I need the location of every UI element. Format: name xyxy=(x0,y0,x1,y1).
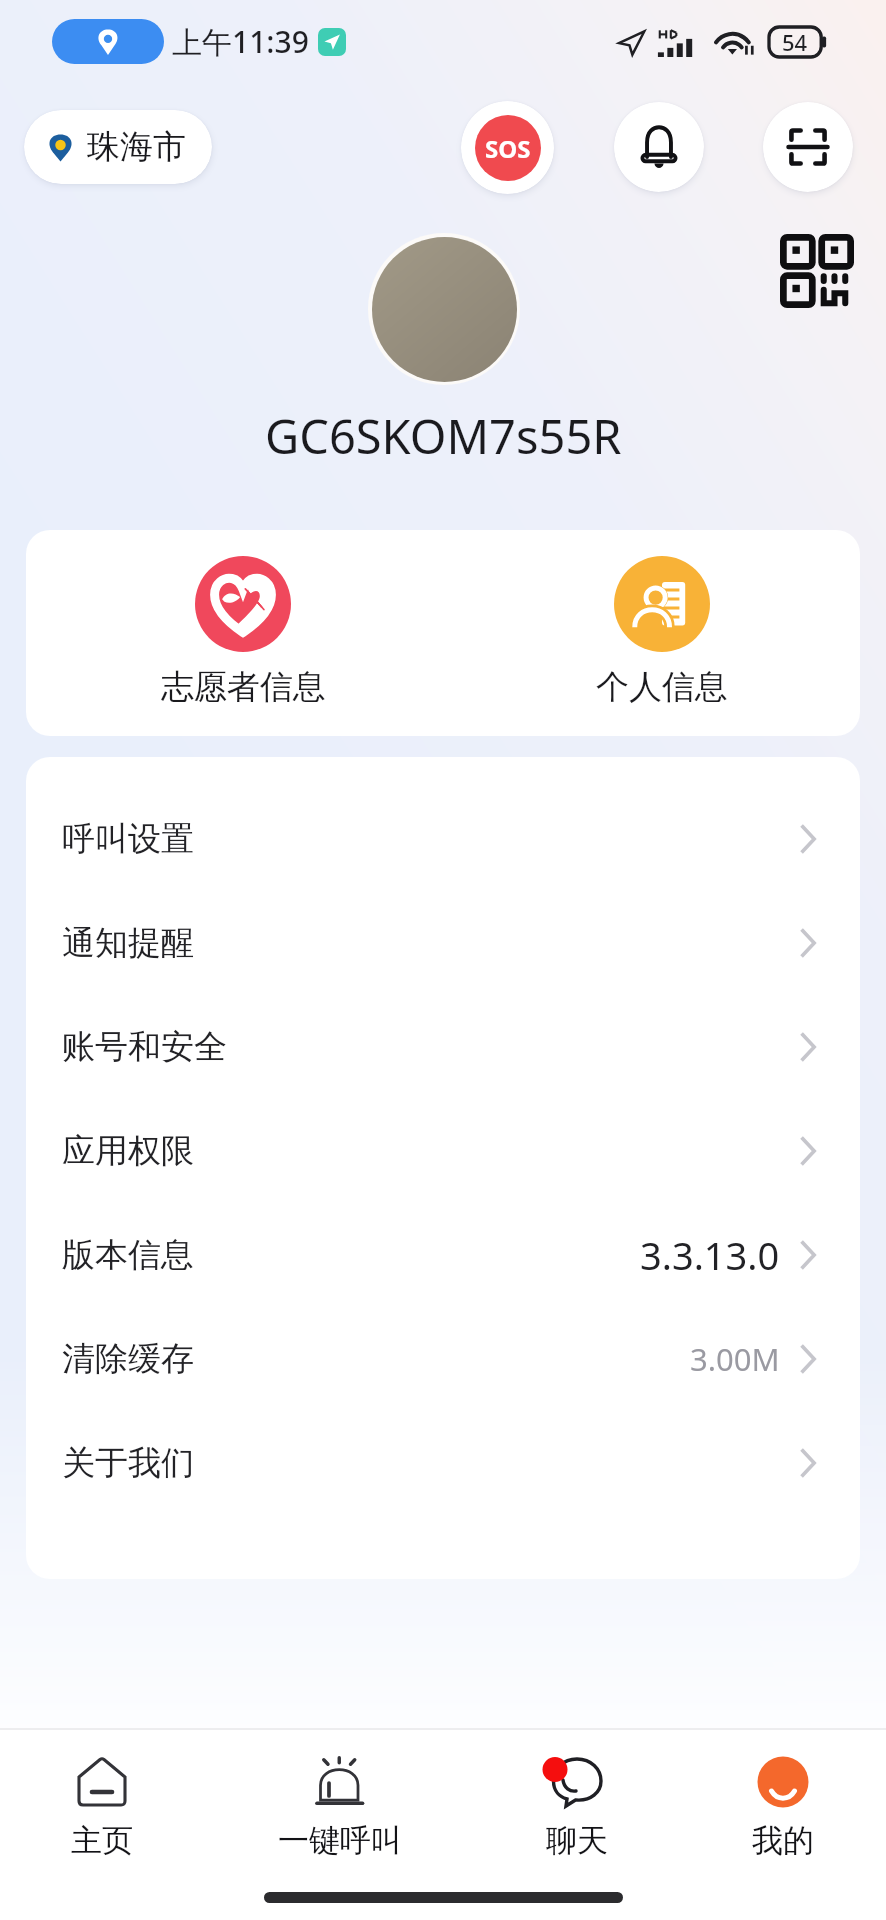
button[interactable]: 通知提醒 xyxy=(26,891,860,995)
button[interactable]: 清除缓存 xyxy=(26,1307,860,1411)
button[interactable]: 版本信息 xyxy=(26,1203,860,1307)
button[interactable]: 账号和安全 xyxy=(26,995,860,1099)
staticText: 3.3.13.0 xyxy=(640,1229,780,1281)
staticText: 关于我们 xyxy=(62,1442,194,1484)
button[interactable]: 我的 xyxy=(713,1730,853,1858)
button[interactable]: 珠海市 xyxy=(24,110,212,184)
staticText: 应用权限 xyxy=(62,1130,194,1172)
staticText: 志愿者信息 xyxy=(161,666,326,708)
staticText: 珠海市 xyxy=(87,126,186,168)
staticText: 通知提醒 xyxy=(62,922,194,964)
button[interactable]: Notifications xyxy=(614,102,704,192)
staticText: 54 xyxy=(782,27,808,57)
button[interactable]: SOS emergency xyxy=(461,101,554,194)
staticText: GC6SKOM7s55R xyxy=(265,404,622,468)
staticText: SOS xyxy=(485,132,531,165)
staticText: 清除缓存 xyxy=(62,1338,194,1380)
staticText: 主页 xyxy=(71,1821,133,1858)
button[interactable]: 聊天 xyxy=(507,1730,647,1858)
staticText: 版本信息 xyxy=(62,1234,194,1276)
button[interactable]: 主页 xyxy=(32,1730,172,1858)
staticText: 3.00M xyxy=(690,1338,780,1380)
button[interactable]: 关于我们 xyxy=(26,1411,860,1515)
staticText: 呼叫设置 xyxy=(62,818,194,860)
button[interactable]: 一键呼叫 xyxy=(270,1730,410,1858)
button[interactable]: 应用权限 xyxy=(26,1099,860,1203)
staticText: 个人信息 xyxy=(596,666,728,708)
staticText: 账号和安全 xyxy=(62,1026,227,1068)
staticText: 一键呼叫 xyxy=(278,1821,402,1858)
button[interactable]: 志愿者信息 xyxy=(133,530,353,708)
button[interactable]: My QR code xyxy=(780,234,854,308)
staticText: 聊天 xyxy=(546,1821,608,1858)
button[interactable]: 个人信息 xyxy=(552,530,772,708)
button[interactable]: 呼叫设置 xyxy=(26,787,860,891)
button[interactable]: Profile avatar xyxy=(372,237,517,382)
button[interactable]: Scan QR code xyxy=(763,102,853,192)
staticText: 上午11:39 xyxy=(172,21,309,62)
staticText: 我的 xyxy=(752,1821,814,1858)
